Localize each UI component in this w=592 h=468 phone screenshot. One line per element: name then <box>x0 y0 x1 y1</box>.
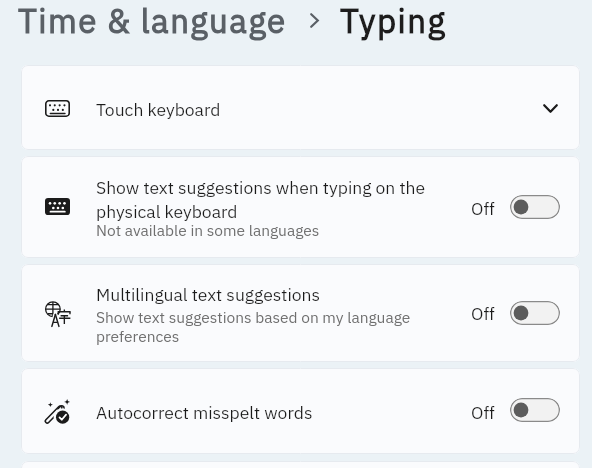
button[interactable]: Off toggle <box>510 301 560 325</box>
staticText: Off <box>471 401 495 424</box>
staticText: Show text suggestions when typing on the… <box>96 176 426 223</box>
other: Expand <box>543 104 558 113</box>
button[interactable]: Time & language <box>18 0 287 42</box>
staticText: Touch keyboard <box>96 98 221 121</box>
button[interactable] <box>21 65 580 150</box>
staticText: Show text suggestions based on my langua… <box>96 307 411 346</box>
staticText: Not available in some languages <box>96 220 320 240</box>
staticText: Off <box>471 197 495 220</box>
button[interactable]: Off toggle <box>510 398 560 422</box>
staticText: Off <box>471 302 495 325</box>
button[interactable]: Off toggle <box>510 195 560 219</box>
staticText: Multilingual text suggestions <box>96 283 321 306</box>
other: Breadcrumb <box>310 13 319 28</box>
staticText: Autocorrect misspelt words <box>96 401 313 424</box>
staticText: Typing <box>340 0 447 42</box>
